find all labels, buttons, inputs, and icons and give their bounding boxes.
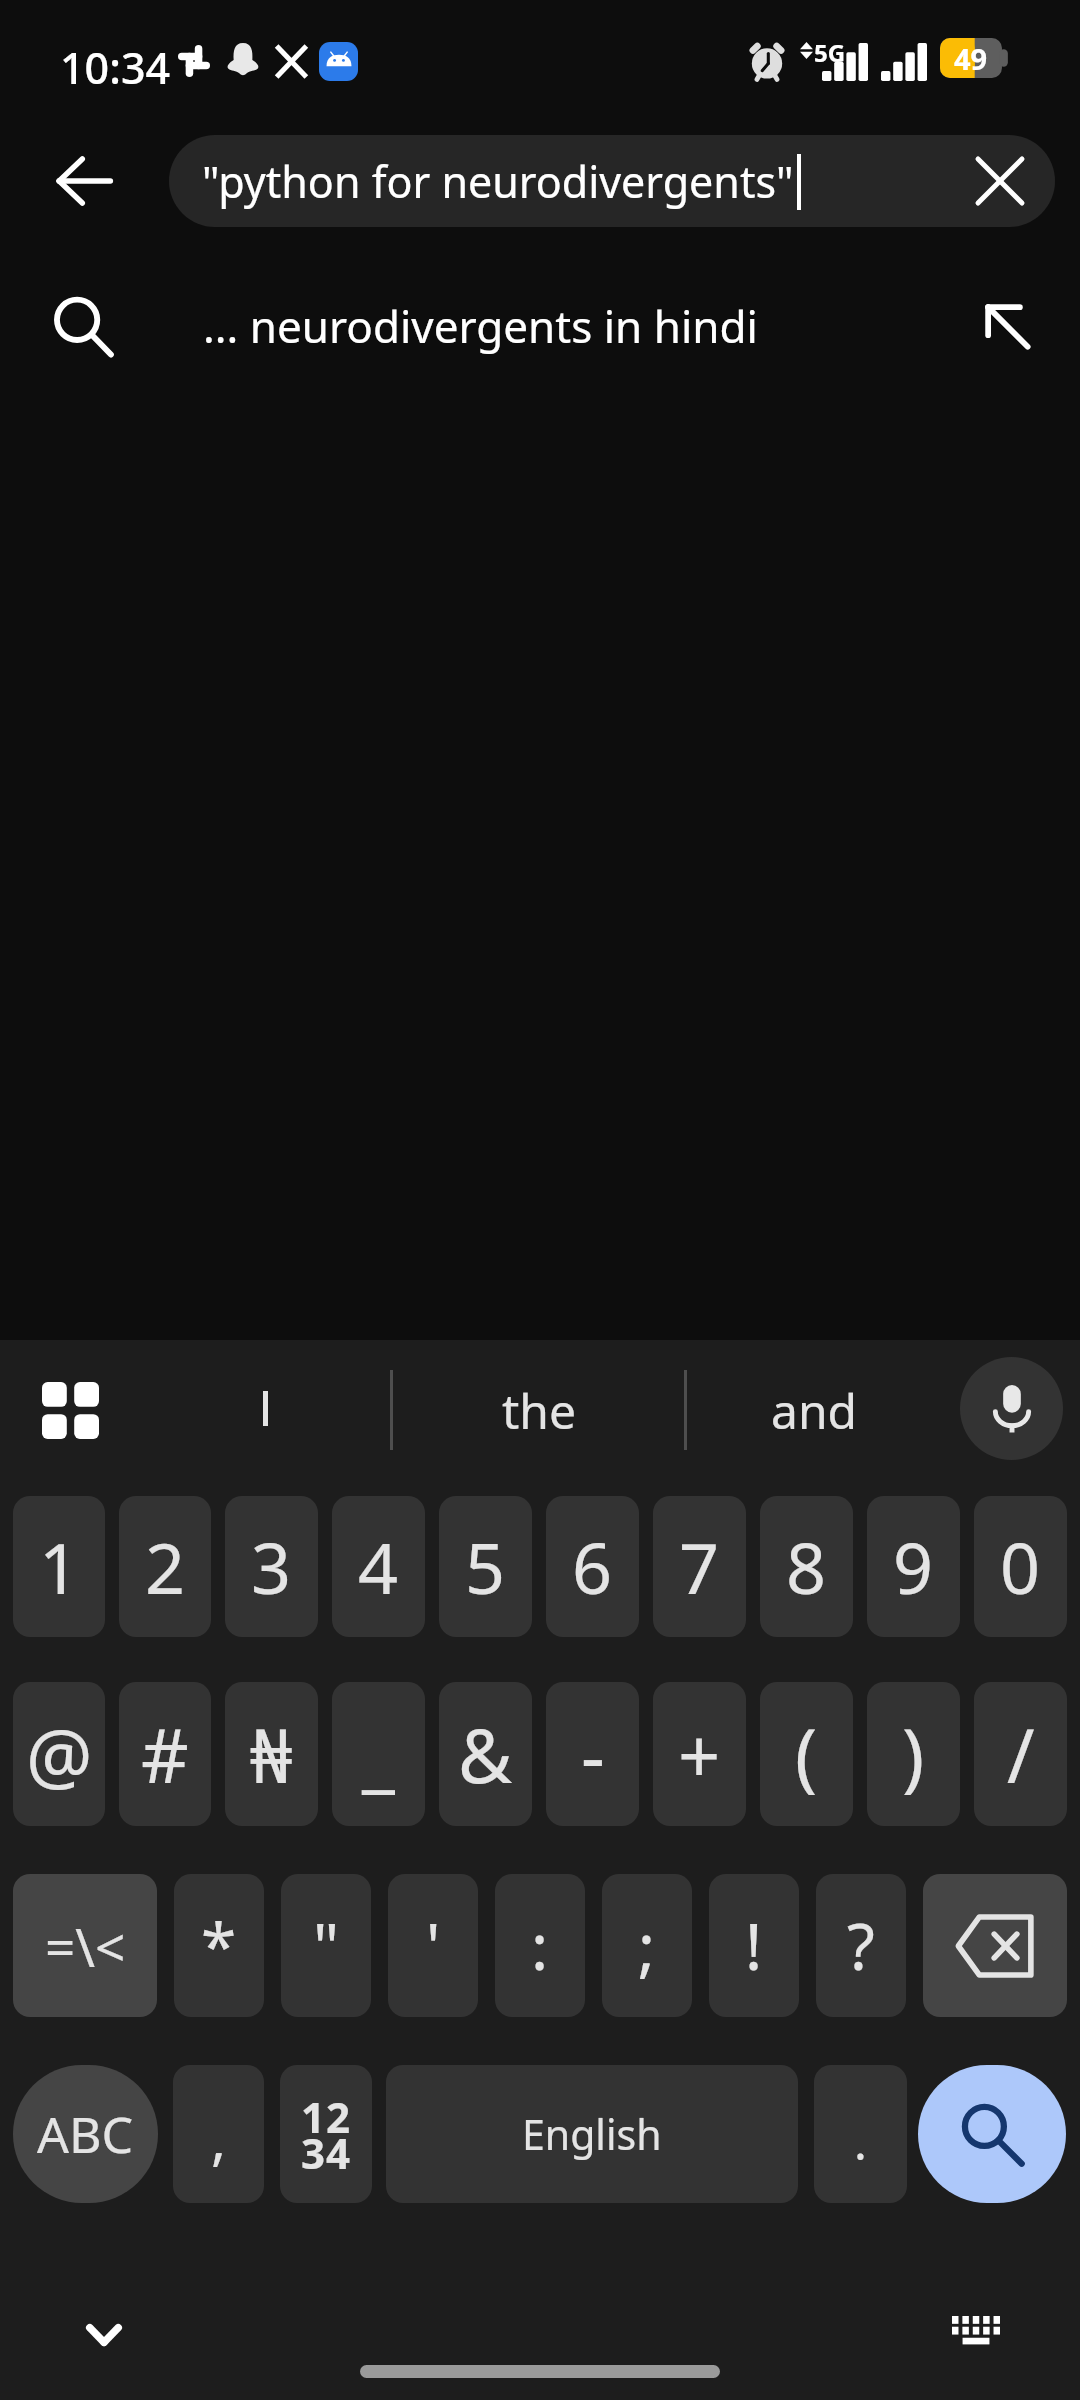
staticText: English [522, 2106, 662, 2162]
staticText: 12 [301, 2088, 352, 2145]
staticText: ) [902, 1704, 925, 1805]
staticText: ₦ [250, 1704, 293, 1805]
button[interactable]: ₦ [225, 1682, 318, 1826]
staticText: ! [745, 1902, 763, 1989]
button[interactable]: 4 [332, 1496, 425, 1637]
staticText: 5G [814, 36, 846, 69]
staticText: - [581, 1704, 605, 1805]
button[interactable]: Hide keyboard [54, 2285, 154, 2385]
button[interactable]: 3 [225, 1496, 318, 1637]
staticText: 0 [1000, 1519, 1041, 1614]
button[interactable]: ? [816, 1874, 906, 2017]
button[interactable]: 6 [546, 1496, 639, 1637]
button[interactable]: Voice input [960, 1357, 1063, 1460]
button[interactable]: ... neurodivergents in hindi [0, 253, 1080, 398]
staticText: the [502, 1378, 577, 1443]
staticText: ' [426, 1902, 441, 1989]
staticText: 49 [954, 39, 988, 78]
button[interactable]: * [174, 1874, 264, 2017]
button[interactable]: English [386, 2065, 798, 2203]
button[interactable]: @ [13, 1682, 105, 1826]
staticText: ; [638, 1902, 656, 1989]
staticText: 5 [465, 1519, 506, 1614]
staticText: , [211, 2100, 227, 2176]
button[interactable]: ! [709, 1874, 799, 2017]
staticText: 2 [145, 1519, 186, 1614]
button[interactable]: "python for neurodivergents" [169, 135, 1055, 227]
button[interactable]: 1 [13, 1496, 105, 1637]
button[interactable]: Clear query [945, 135, 1055, 227]
button[interactable]: : [495, 1874, 585, 2017]
staticText: 34 [301, 2124, 352, 2181]
staticText: . [854, 2109, 867, 2174]
staticText: 3 [251, 1519, 292, 1614]
staticText: _ [362, 1704, 395, 1805]
button[interactable]: and [687, 1340, 941, 1480]
staticText: & [458, 1704, 513, 1805]
button[interactable]: 9 [867, 1496, 960, 1637]
button[interactable]: 0 [974, 1496, 1067, 1637]
staticText: : [531, 1902, 549, 1989]
button[interactable]: ABC [13, 2065, 158, 2203]
button[interactable]: More symbols [13, 1874, 157, 2017]
button[interactable]: Back [29, 126, 139, 236]
button[interactable]: + [653, 1682, 746, 1826]
staticText: 7 [679, 1519, 720, 1614]
staticText: ... neurodivergents in hindi [203, 296, 758, 356]
staticText: ? [847, 1902, 875, 1989]
button[interactable]: & [439, 1682, 532, 1826]
button[interactable]: Number pad [280, 2065, 372, 2203]
staticText: 9 [893, 1519, 934, 1614]
staticText: 4 [358, 1519, 399, 1614]
staticText: + [678, 1704, 721, 1805]
staticText: * [201, 1902, 237, 1989]
staticText: 8 [786, 1519, 827, 1614]
staticText: 6 [572, 1519, 613, 1614]
button[interactable]: _ [332, 1682, 425, 1826]
button[interactable]: ' [388, 1874, 478, 2017]
staticText: " [313, 1902, 340, 1989]
staticText: / [1007, 1704, 1035, 1805]
button[interactable] [140, 1340, 390, 1480]
staticText: ABC [37, 2100, 134, 2168]
button[interactable]: Backspace [923, 1874, 1067, 2017]
staticText: ( [795, 1704, 818, 1805]
button[interactable]: Use suggestion [952, 253, 1062, 398]
button[interactable]: 7 [653, 1496, 746, 1637]
button[interactable]: - [546, 1682, 639, 1826]
staticText: 10:34 [60, 38, 171, 97]
staticText: # [141, 1704, 189, 1805]
button[interactable]: 2 [119, 1496, 211, 1637]
button[interactable]: ; [602, 1874, 692, 2017]
button[interactable]: , [173, 2065, 264, 2203]
staticText: @ [26, 1704, 93, 1805]
button[interactable]: Search [918, 2065, 1066, 2203]
button[interactable]: / [974, 1682, 1067, 1826]
button[interactable]: Keyboard toolbar [12, 1340, 128, 1480]
button[interactable]: 8 [760, 1496, 853, 1637]
button[interactable]: Change keyboard [926, 2280, 1026, 2380]
button[interactable]: " [281, 1874, 371, 2017]
button[interactable]: the [393, 1340, 685, 1480]
button[interactable]: . [814, 2065, 907, 2203]
button[interactable]: 5 [439, 1496, 532, 1637]
button[interactable]: ( [760, 1682, 853, 1826]
staticText: =\< [45, 1910, 126, 1982]
button[interactable]: # [119, 1682, 211, 1826]
button[interactable]: ) [867, 1682, 960, 1826]
staticText: "python for neurodivergents" [202, 152, 794, 211]
staticText: and [771, 1378, 858, 1443]
staticText: 1 [39, 1519, 80, 1614]
